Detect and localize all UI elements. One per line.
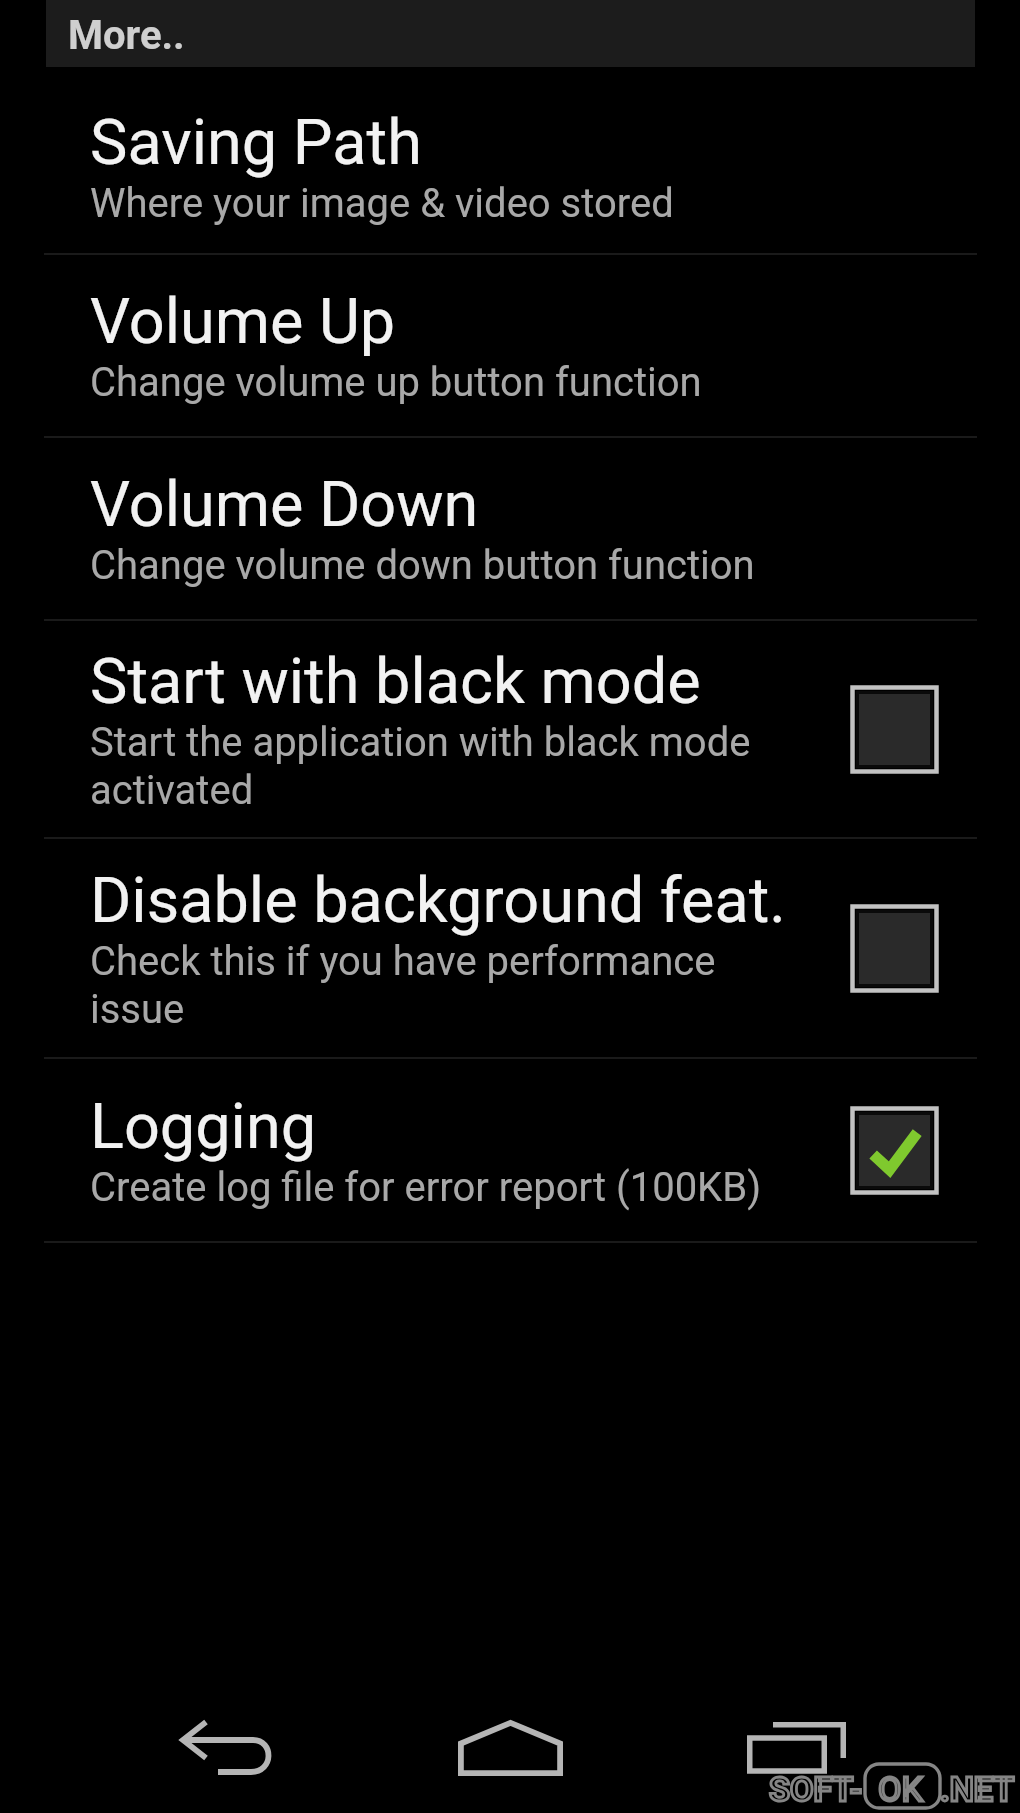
staticText: Logging	[90, 1090, 317, 1164]
button[interactable]: Back	[157, 1693, 297, 1803]
button[interactable]: Home	[440, 1693, 580, 1803]
staticText: SOFT-	[769, 1769, 863, 1809]
button[interactable]: Recent apps	[726, 1693, 866, 1803]
staticText: Disable background feat.	[90, 864, 786, 938]
staticText: .NET	[940, 1769, 1015, 1809]
staticText: Volume Down	[90, 468, 479, 542]
button[interactable]: Volume Down	[0, 438, 1020, 619]
staticText: Change volume down button function	[90, 542, 755, 589]
button[interactable]: Unchecked	[850, 904, 939, 993]
staticText: OK	[878, 1769, 923, 1809]
button[interactable]: Logging	[0, 1059, 1020, 1241]
staticText: Saving Path	[90, 106, 422, 180]
staticText: Volume Up	[90, 285, 396, 359]
staticText: Start with black mode	[90, 645, 701, 719]
staticText: Create log file for error report (100KB)	[90, 1164, 762, 1211]
button[interactable]: Unchecked	[850, 685, 939, 774]
staticText: Check this if you have performance issue	[90, 938, 790, 1033]
staticText: More..	[68, 12, 185, 59]
button[interactable]: Disable background feat.	[0, 839, 1020, 1057]
staticText: Where your image & video stored	[90, 180, 674, 227]
staticText: Change volume up button function	[90, 359, 702, 406]
button[interactable]: Saving Path	[0, 79, 1020, 253]
button[interactable]: Volume Up	[0, 255, 1020, 436]
button[interactable]: Checked	[850, 1106, 939, 1195]
staticText: Start the application with black mode ac…	[90, 719, 790, 814]
button[interactable]: Start with black mode	[0, 621, 1020, 837]
